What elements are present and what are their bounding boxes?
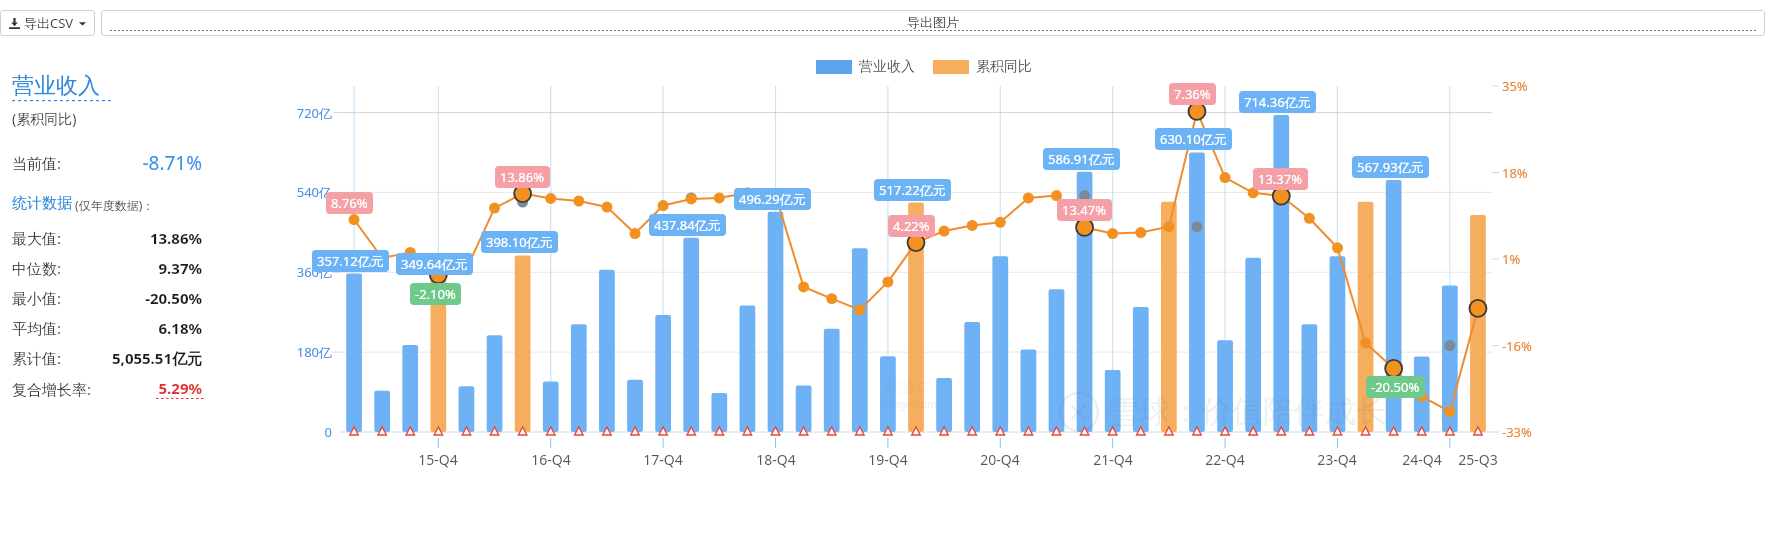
staticText: 13.37%	[1258, 170, 1303, 188]
staticText: 平均值:	[12, 318, 108, 338]
staticText: 25-Q3	[1451, 450, 1505, 469]
staticText: 复合增长率:	[12, 379, 108, 399]
button[interactable]: 营业收入	[12, 72, 100, 100]
staticText: 13.86%	[500, 168, 545, 186]
staticText: 统计数据	[12, 194, 72, 213]
staticText: 8.76%	[331, 194, 368, 212]
staticText: -8.71%	[104, 150, 202, 176]
staticText: 13.86%	[149, 228, 202, 248]
staticText: 360亿	[286, 263, 332, 281]
staticText: -16%	[1502, 337, 1532, 355]
staticText: 630.10亿元	[1160, 130, 1227, 148]
staticText: 当前值:	[12, 153, 104, 173]
staticText: -2.10%	[415, 285, 456, 303]
staticText: -20.50%	[145, 288, 202, 308]
staticText: 496.29亿元	[739, 190, 806, 208]
staticText: -33%	[1502, 423, 1532, 441]
staticText: 导出CSV	[24, 14, 74, 32]
staticText: -20.50%	[1371, 378, 1420, 396]
staticText: 22-Q4	[1198, 450, 1252, 469]
staticText: 5.29%	[158, 378, 202, 398]
staticText: 17-Q4	[636, 450, 690, 469]
staticText: 21-Q4	[1086, 450, 1140, 469]
staticText: 雪球：价值陪伴成长	[1108, 392, 1387, 431]
staticText: 437.84亿元	[654, 216, 721, 234]
staticText: 13.47%	[1062, 201, 1107, 219]
staticText: 349.64亿元	[401, 255, 468, 273]
staticText: (累积同比)	[12, 109, 77, 128]
staticText: 0	[320, 423, 332, 441]
staticText: (仅年度数据)：	[72, 197, 155, 213]
staticText: 18-Q4	[749, 450, 803, 469]
staticText: 398.10亿元	[486, 233, 553, 251]
staticText: 累计值:	[12, 348, 108, 368]
staticText: 1%	[1502, 250, 1521, 268]
staticText: 20-Q4	[973, 450, 1027, 469]
staticText: 理杏仁	[886, 378, 931, 397]
staticText: 9.37%	[158, 258, 202, 278]
staticText: 6.18%	[158, 318, 202, 338]
staticText: 最大值:	[12, 228, 108, 248]
staticText: 517.22亿元	[879, 181, 946, 199]
staticText: lixinger.com	[880, 397, 937, 411]
staticText: 中位数:	[12, 258, 108, 278]
staticText: 4.22%	[893, 217, 930, 235]
staticText: 19-Q4	[861, 450, 915, 469]
staticText: 15-Q4	[411, 450, 465, 469]
staticText: 24-Q4	[1395, 450, 1449, 469]
staticText: 导出图片	[907, 14, 959, 30]
staticText: 7.36%	[1174, 85, 1211, 103]
staticText: 714.36亿元	[1244, 93, 1311, 111]
staticText: 720亿	[286, 104, 332, 122]
staticText: 180亿	[286, 343, 332, 361]
staticText: 最小值:	[12, 288, 108, 308]
staticText: 累积同比	[976, 58, 1032, 76]
staticText: 540亿	[286, 183, 332, 201]
staticText: 23-Q4	[1310, 450, 1364, 469]
staticText: 35%	[1502, 77, 1528, 95]
staticText: 567.93亿元	[1357, 158, 1424, 176]
staticText: 357.12亿元	[317, 252, 384, 270]
staticText: 18%	[1502, 164, 1528, 182]
staticText: 16-Q4	[524, 450, 578, 469]
staticText: 营业收入	[859, 58, 915, 76]
button[interactable]: 导出CSV	[0, 10, 95, 36]
button[interactable]: 导出图片	[101, 10, 1765, 36]
staticText: 5,055.51亿元	[112, 348, 202, 368]
staticText: 586.91亿元	[1048, 150, 1115, 168]
